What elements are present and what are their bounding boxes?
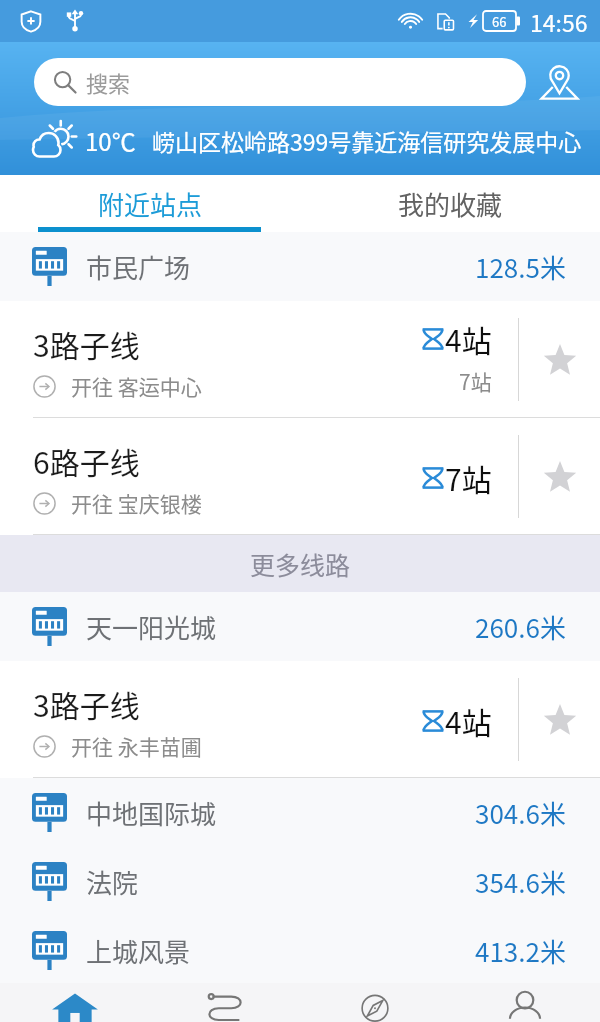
button[interactable]: 搜索 xyxy=(34,58,526,106)
button[interactable]: 上城风景 xyxy=(0,916,600,985)
staticText: 搜索 xyxy=(86,66,131,98)
staticText: 260.6米 xyxy=(475,608,566,646)
staticText: 4站 xyxy=(445,317,492,360)
staticText: 3路子线 xyxy=(33,682,140,725)
staticText: 天一阳光城 xyxy=(86,608,217,646)
staticText: 更多线路 xyxy=(250,546,351,582)
staticText: 开往 客运中心 xyxy=(71,371,202,401)
staticText: 7站 xyxy=(445,456,492,499)
button[interactable]: Home xyxy=(0,983,150,1022)
staticText: 3路子线 xyxy=(33,322,140,365)
staticText: 4站 xyxy=(445,699,492,742)
staticText: 市民广场 xyxy=(86,248,191,286)
button[interactable]: 天一阳光城 xyxy=(0,592,600,661)
staticText: 10℃ xyxy=(85,123,136,158)
staticText: 66 xyxy=(492,12,507,31)
button[interactable]: 附近站点 xyxy=(0,175,300,232)
button[interactable]: 我的收藏 xyxy=(300,175,600,232)
button[interactable]: 法院 xyxy=(0,847,600,916)
button[interactable]: Favorite xyxy=(519,301,600,418)
button[interactable]: 6路子线 xyxy=(0,418,600,535)
button[interactable]: 3路子线 xyxy=(0,301,600,418)
staticText: 14:56 xyxy=(530,5,588,38)
staticText: 128.5米 xyxy=(475,248,566,286)
button[interactable]: Profile xyxy=(450,983,600,1022)
staticText: 304.6米 xyxy=(475,794,566,832)
button[interactable]: Map xyxy=(536,59,583,106)
button[interactable]: 更多线路 xyxy=(0,535,600,592)
staticText: 法院 xyxy=(86,863,139,901)
staticText: 开往 永丰苗圃 xyxy=(71,731,202,761)
staticText: 附近站点 xyxy=(98,185,203,223)
button[interactable]: 中地国际城 xyxy=(0,778,600,847)
button[interactable]: Explore xyxy=(300,983,450,1022)
staticText: 7站 xyxy=(459,366,492,396)
staticText: 我的收藏 xyxy=(398,185,503,223)
staticText: 中地国际城 xyxy=(86,794,217,832)
staticText: 6路子线 xyxy=(33,439,140,482)
staticText: 上城风景 xyxy=(86,932,191,970)
button[interactable]: 3路子线 xyxy=(0,661,600,778)
staticText: 354.6米 xyxy=(475,863,566,901)
staticText: 开往 宝庆银楼 xyxy=(71,488,202,518)
staticText: 崂山区松岭路399号靠近海信研究发展中心 xyxy=(152,124,582,157)
staticText: 413.2米 xyxy=(475,932,566,970)
button[interactable]: Routes xyxy=(150,983,300,1022)
button[interactable]: Favorite xyxy=(519,418,600,535)
button[interactable]: Favorite xyxy=(519,661,600,778)
button[interactable]: 市民广场 xyxy=(0,232,600,301)
